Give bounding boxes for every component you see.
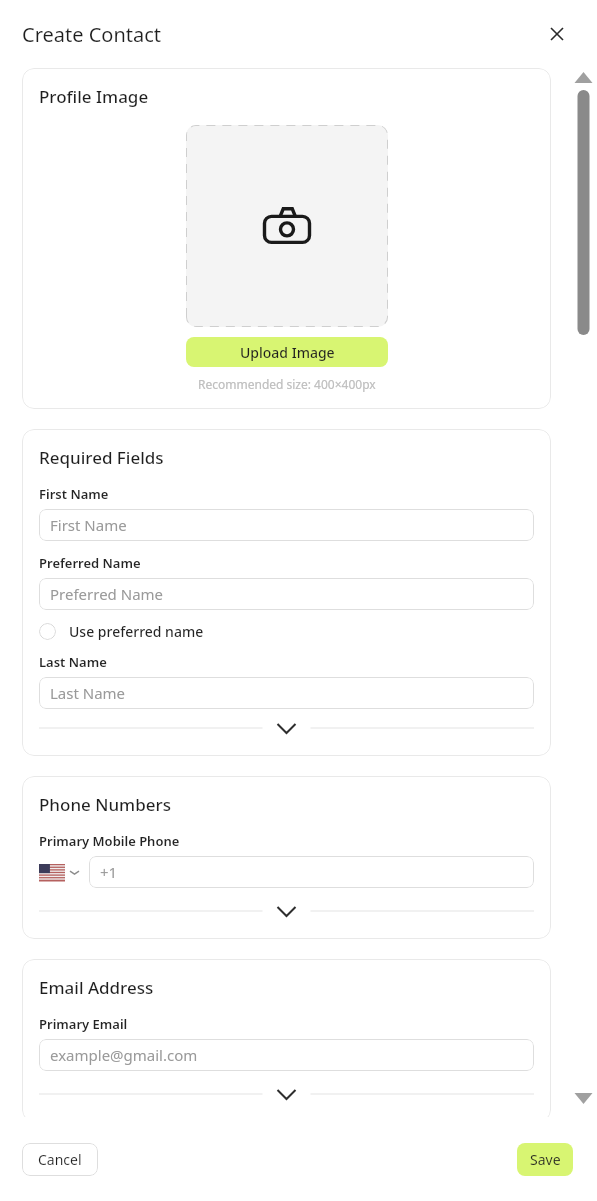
staticText: Create Contact xyxy=(22,21,162,48)
staticText: Recommended size: 400×400px xyxy=(198,376,376,392)
staticText: Upload Image xyxy=(240,343,335,362)
button[interactable]: +1 xyxy=(89,856,534,888)
staticText: +1 xyxy=(100,862,118,882)
button[interactable]: Add profile photo xyxy=(186,125,388,327)
button[interactable]: Use preferred name xyxy=(39,622,204,641)
button[interactable]: Upload Image xyxy=(186,337,388,367)
button[interactable]: Last Name xyxy=(39,677,534,709)
staticText: Preferred Name xyxy=(50,584,164,604)
staticText: Phone Numbers xyxy=(39,793,171,816)
staticText: Profile Image xyxy=(39,85,149,108)
button[interactable]: Show more fields xyxy=(39,1083,534,1105)
staticText: example@gmail.com xyxy=(50,1045,198,1065)
button[interactable]: First Name xyxy=(39,509,534,541)
staticText: Last Name xyxy=(39,653,107,671)
staticText: First Name xyxy=(39,485,109,503)
staticText: Email Address xyxy=(39,976,154,999)
staticText: Last Name xyxy=(50,683,126,703)
button[interactable]: Cancel xyxy=(22,1143,98,1176)
staticText: Save xyxy=(530,1150,561,1169)
button[interactable]: Close xyxy=(543,20,571,48)
staticText: Cancel xyxy=(38,1150,82,1169)
button[interactable]: Preferred Name xyxy=(39,578,534,610)
staticText: Primary Mobile Phone xyxy=(39,832,180,850)
button[interactable]: Show more fields xyxy=(39,717,534,739)
staticText: Use preferred name xyxy=(69,622,204,641)
button[interactable]: Select country code xyxy=(39,864,79,881)
button[interactable]: Show more fields xyxy=(39,900,534,922)
staticText: Preferred Name xyxy=(39,554,141,572)
staticText: Primary Email xyxy=(39,1015,128,1033)
staticText: First Name xyxy=(50,515,127,535)
button[interactable]: example@gmail.com xyxy=(39,1039,534,1071)
staticText: Required Fields xyxy=(39,446,164,469)
button[interactable]: Save xyxy=(517,1143,573,1176)
